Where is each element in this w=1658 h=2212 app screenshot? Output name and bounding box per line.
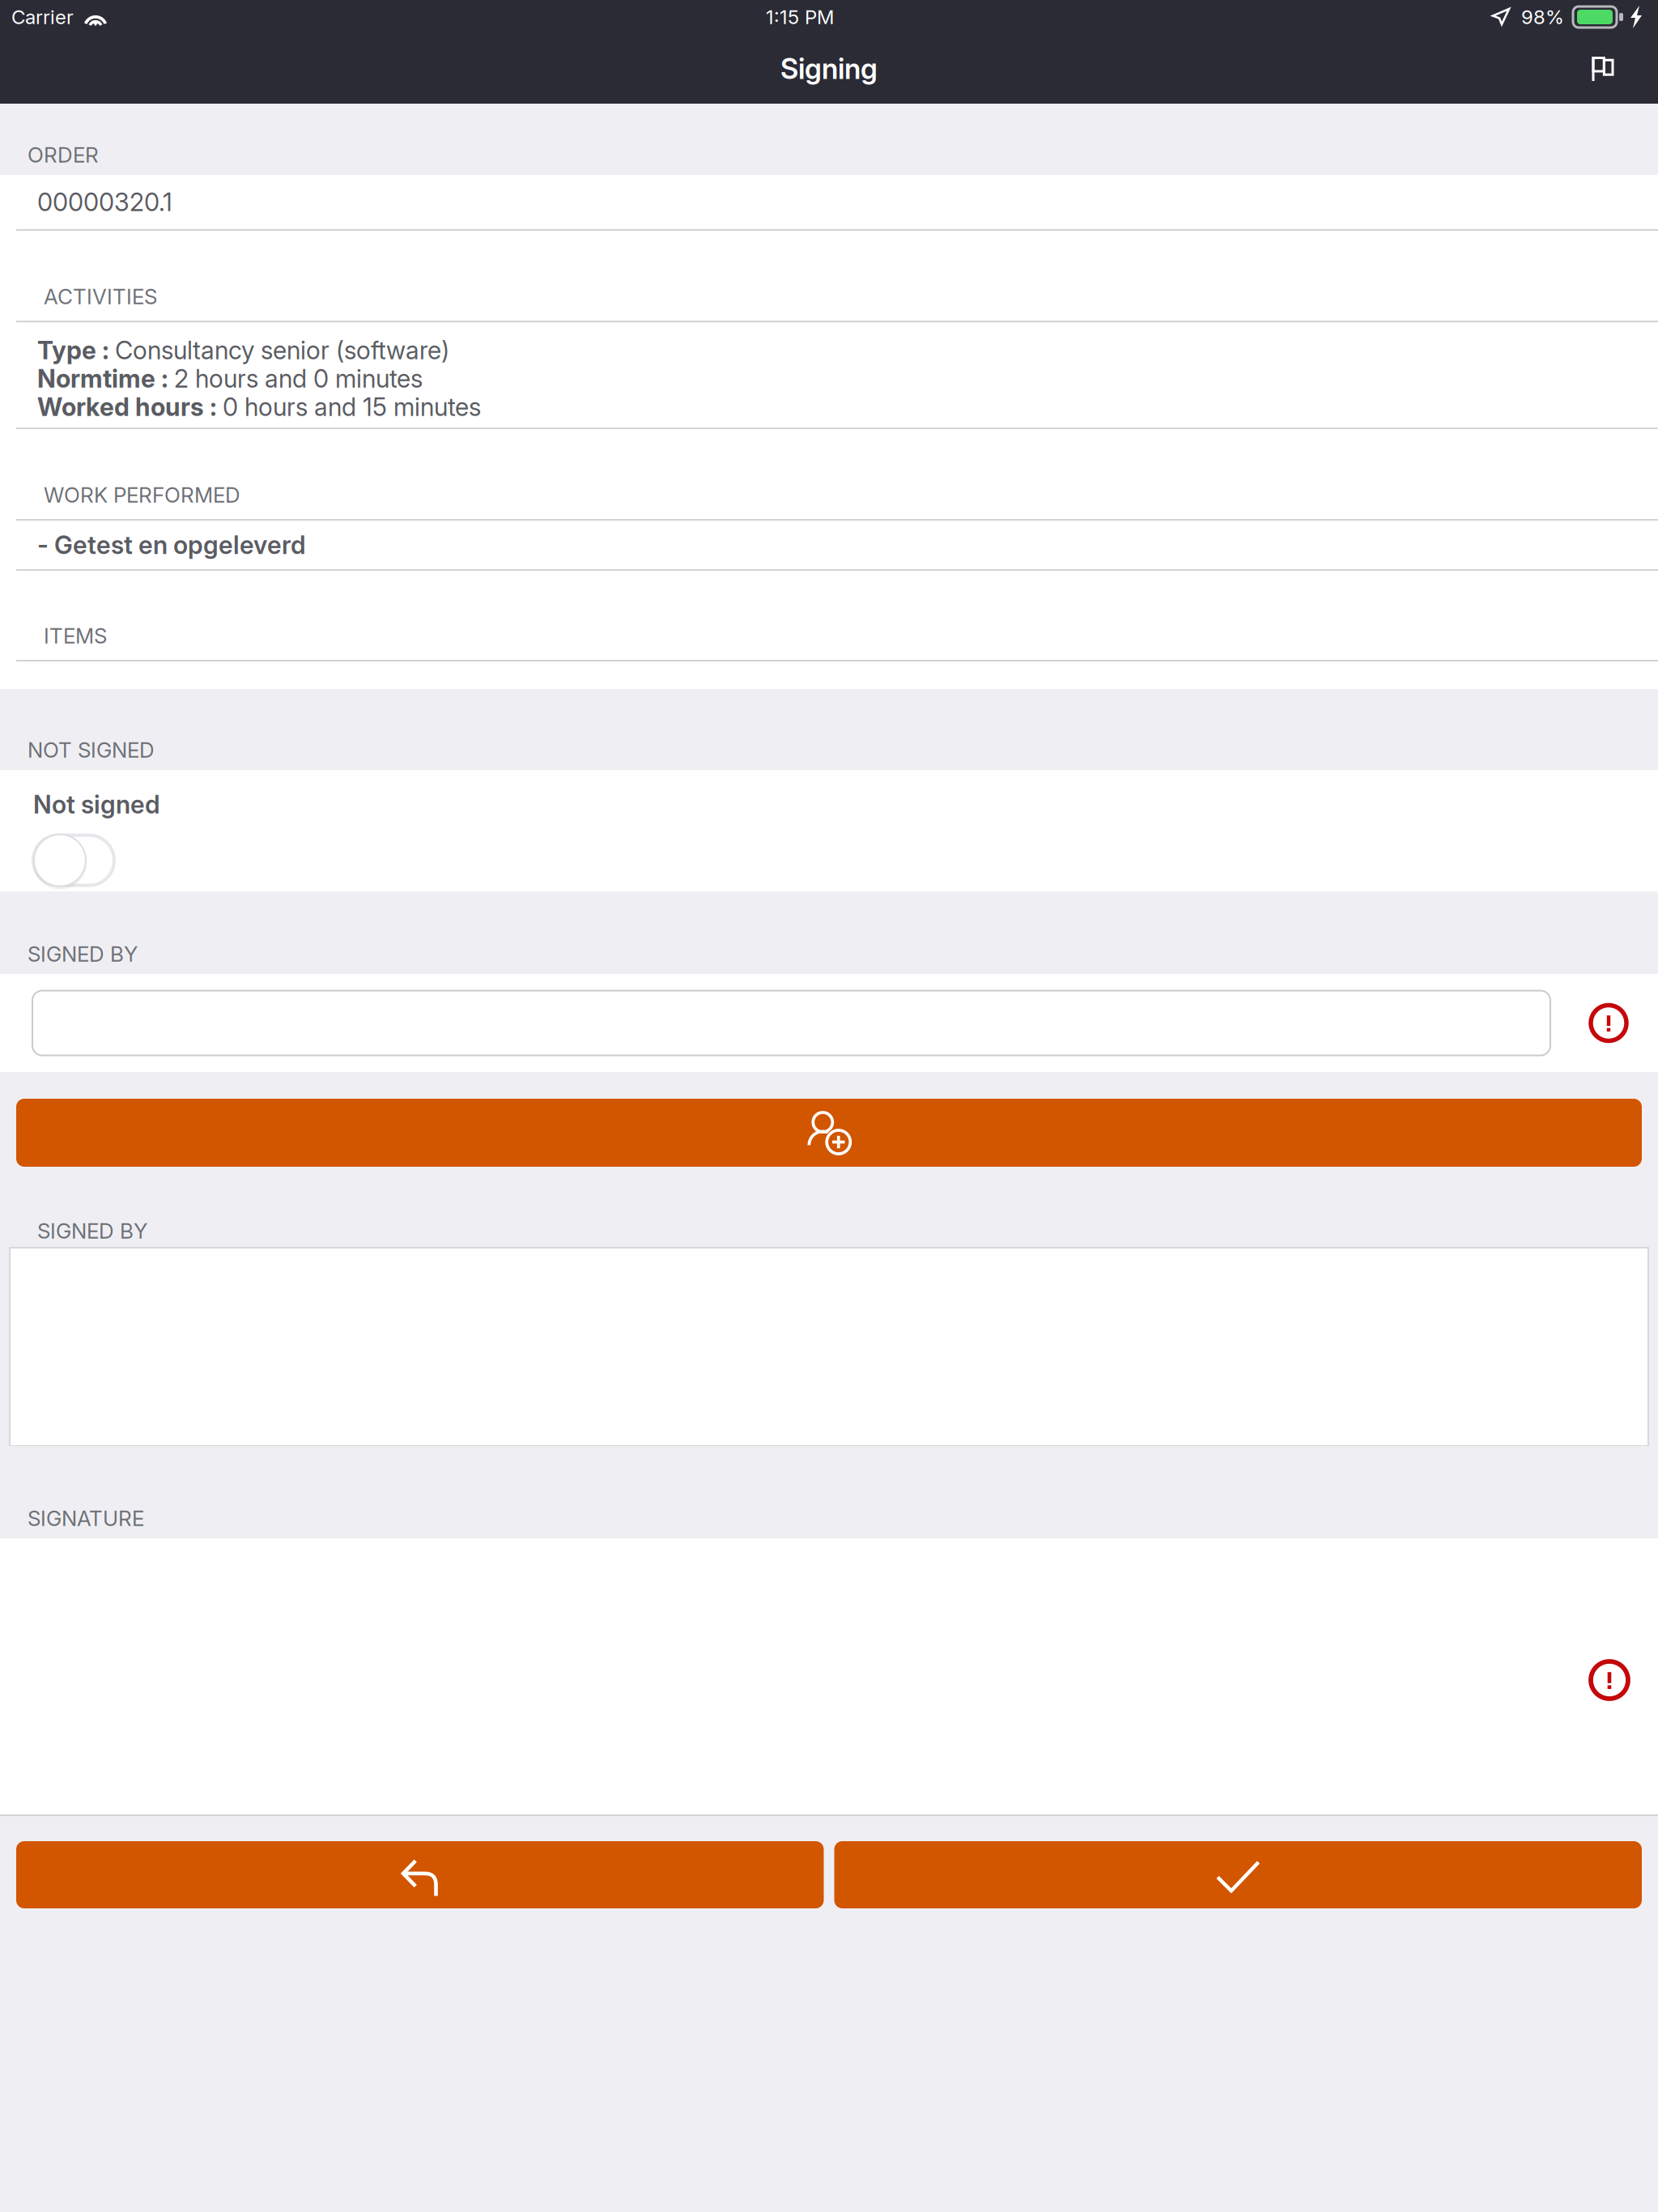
staticText: WORK PERFORMED xyxy=(44,482,240,508)
staticText: Normtime : xyxy=(37,363,174,393)
staticText: 0 hours and 15 minutes xyxy=(223,392,481,422)
staticText: SIGNED BY xyxy=(28,941,138,967)
staticText: Carrier xyxy=(11,5,74,29)
staticText: SIGNATURE xyxy=(28,1506,144,1531)
staticText: - Getest en opgeleverd xyxy=(37,530,306,560)
staticText: SIGNED BY xyxy=(37,1218,147,1244)
staticText: Signing xyxy=(780,52,878,86)
staticText: 98% xyxy=(1521,5,1564,29)
staticText: Consultancy senior (software) xyxy=(115,335,449,365)
button[interactable]: Flag xyxy=(1562,34,1643,104)
staticText: Not signed xyxy=(33,789,160,819)
button[interactable]: Confirm xyxy=(834,1841,1642,1908)
staticText: ACTIVITIES xyxy=(44,284,157,309)
staticText: 2 hours and 0 minutes xyxy=(174,363,423,393)
staticText: 1:15 PM xyxy=(766,5,834,29)
staticText: ORDER xyxy=(28,142,99,168)
button[interactable]: Add signer xyxy=(0,1099,1658,1167)
staticText: 00000320.1 xyxy=(37,187,172,217)
staticText: ITEMS xyxy=(44,623,107,649)
staticText: Worked hours : xyxy=(37,392,223,422)
staticText: Type : xyxy=(37,335,115,365)
staticText: NOT SIGNED xyxy=(28,737,155,763)
button[interactable]: Undo xyxy=(16,1841,824,1908)
button[interactable]: Not signed xyxy=(0,770,1658,891)
